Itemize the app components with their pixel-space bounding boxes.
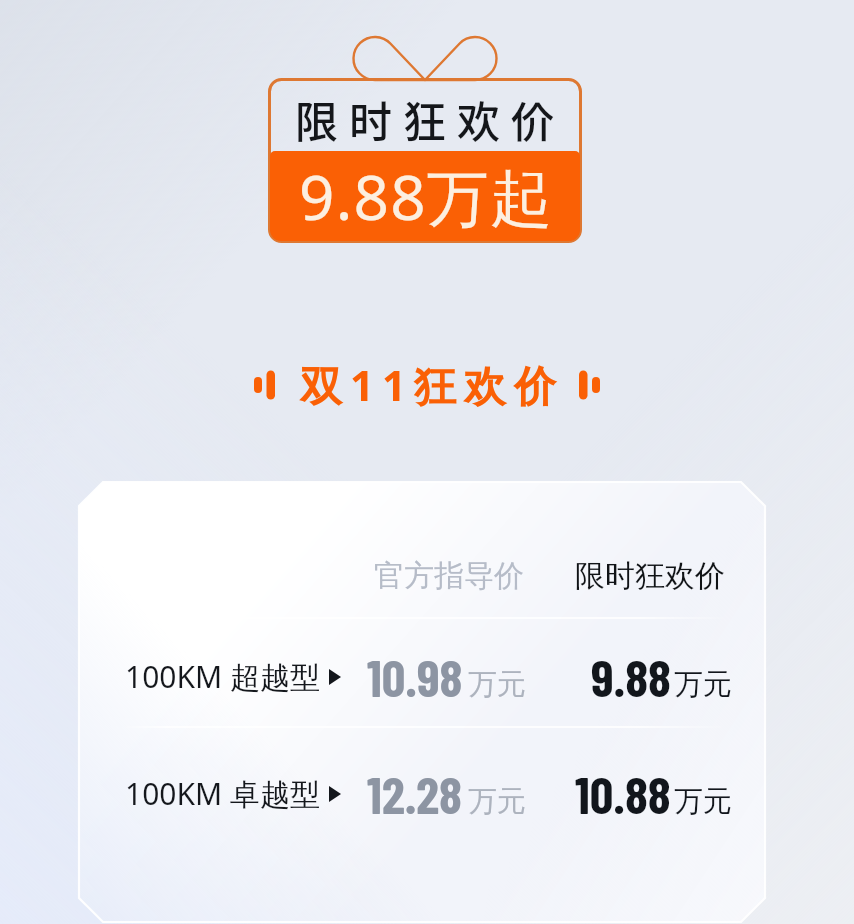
staticText: 万元 bbox=[674, 666, 732, 703]
staticText: 100KM 卓越型 bbox=[125, 773, 321, 814]
staticText: 100KM 超越型 bbox=[125, 656, 321, 697]
staticText: 限时狂欢价 bbox=[575, 557, 725, 595]
staticText: 10.98 bbox=[367, 645, 463, 707]
staticText: 9.88万起 bbox=[299, 154, 554, 239]
staticText: 双11狂欢价 bbox=[300, 356, 565, 413]
staticText: 万元 bbox=[468, 783, 526, 820]
staticText: 12.28 bbox=[367, 762, 463, 824]
button[interactable]: 100KM 卓越型 bbox=[79, 758, 765, 828]
staticText: 万元 bbox=[468, 666, 526, 703]
button[interactable]: 限时狂欢价 bbox=[268, 78, 582, 243]
button[interactable]: 100KM 超越型 bbox=[79, 641, 765, 711]
staticText: 9.88 bbox=[591, 645, 671, 707]
staticText: 10.88 bbox=[575, 762, 671, 824]
staticText: 限时狂欢价 bbox=[295, 88, 565, 150]
staticText: 官方指导价 bbox=[374, 557, 524, 595]
staticText: 万元 bbox=[674, 783, 732, 820]
